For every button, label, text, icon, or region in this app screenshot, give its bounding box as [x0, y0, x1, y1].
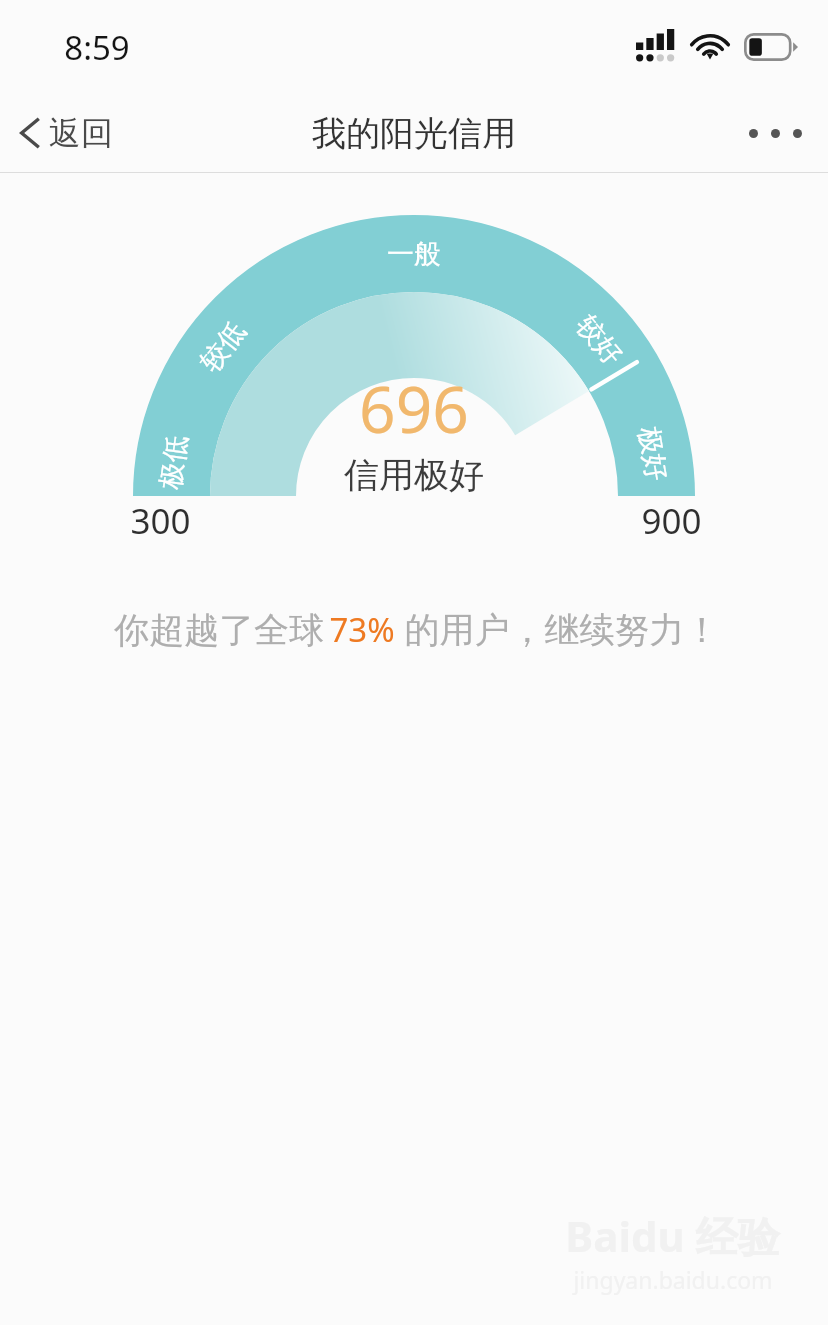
staticText: 返回	[49, 113, 113, 153]
staticText: 73%	[329, 607, 395, 652]
staticText: 的用户，继续努力！	[395, 605, 720, 653]
staticText: 8:59	[64, 25, 130, 70]
staticText: 696	[359, 365, 469, 452]
staticText: 信用极好	[344, 453, 484, 497]
staticText: 我的阳光信用	[312, 112, 516, 155]
staticText: 300	[130, 497, 191, 545]
staticText: 900	[641, 497, 702, 545]
button[interactable]: 返回	[0, 102, 135, 164]
staticText: 你超越了全球	[109, 605, 329, 653]
button[interactable]: More options	[723, 113, 828, 154]
staticText: jingyan.baidu.com	[573, 1264, 773, 1295]
staticText: Baidu 经验	[565, 1207, 780, 1264]
